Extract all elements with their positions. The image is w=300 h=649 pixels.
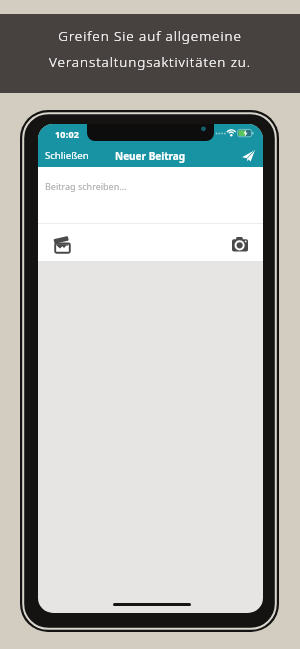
- staticText: 10:02: [55, 128, 80, 140]
- button[interactable]: [242, 150, 255, 162]
- staticText: Greifen Sie auf allgemeine Veranstaltung…: [49, 27, 251, 71]
- staticText: Schließen: [45, 149, 89, 162]
- staticText: Neuer Beitrag: [115, 149, 186, 163]
- button[interactable]: Beitrag schreiben...: [38, 167, 263, 223]
- staticText: Beitrag schreiben...: [45, 180, 127, 192]
- button[interactable]: [232, 237, 248, 252]
- button[interactable]: Schließen: [41, 143, 91, 168]
- button[interactable]: [53, 234, 71, 253]
